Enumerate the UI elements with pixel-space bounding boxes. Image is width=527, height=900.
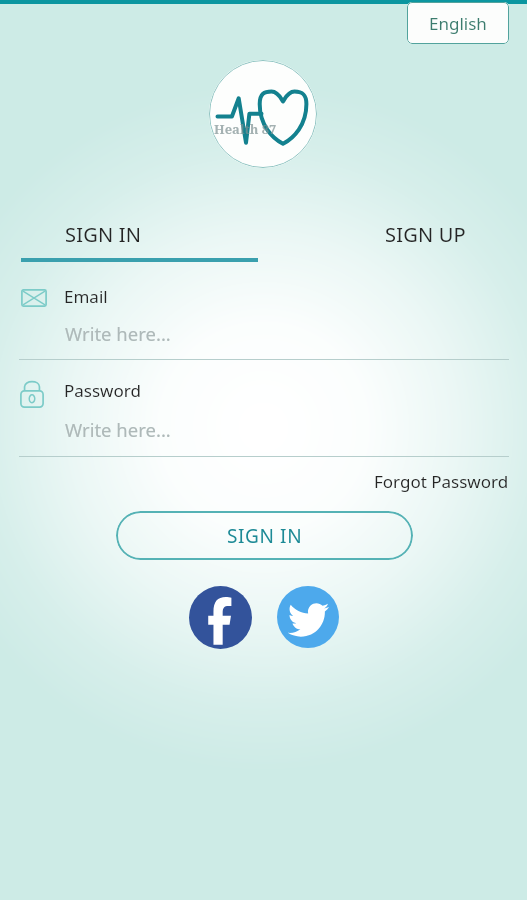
button[interactable]: SIGN IN xyxy=(20,211,258,258)
staticText: Write here... xyxy=(65,321,171,346)
staticText: Forgot Password xyxy=(374,470,509,493)
staticText: Health 87 xyxy=(214,120,277,138)
staticText: SIGN IN xyxy=(227,523,303,549)
staticText: Email xyxy=(64,285,108,308)
staticText: SIGN IN xyxy=(65,221,142,248)
staticText: English xyxy=(429,12,487,35)
staticText: Write here... xyxy=(65,417,171,442)
staticText: Password xyxy=(64,379,141,402)
button[interactable]: English xyxy=(407,2,509,44)
button[interactable]: SIGN IN xyxy=(116,511,413,560)
button[interactable]: Forgot Password xyxy=(360,466,510,496)
button[interactable]: Sign in with Twitter xyxy=(277,586,339,648)
button[interactable]: Sign in with Facebook xyxy=(189,586,252,649)
staticText: SIGN UP xyxy=(385,221,466,248)
button[interactable]: SIGN UP xyxy=(290,211,527,258)
